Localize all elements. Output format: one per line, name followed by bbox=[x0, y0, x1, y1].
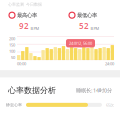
staticText: 50 bbox=[11, 55, 15, 60]
staticText: 52 bbox=[79, 20, 89, 31]
button[interactable]: 最高心率 bbox=[0, 12, 60, 31]
staticText: 100 bbox=[9, 48, 15, 54]
staticText: 最低心率 bbox=[77, 12, 97, 18]
staticText: 24:00 bbox=[105, 61, 114, 66]
button[interactable]: 最低心率 bbox=[60, 12, 120, 31]
staticText: 最高心率 bbox=[17, 12, 37, 18]
staticText: 65次 bbox=[106, 102, 114, 107]
staticText: 24:0(12, 56:00 bbox=[69, 41, 92, 46]
staticText: 静息心率 bbox=[6, 102, 22, 107]
staticText: 92 bbox=[19, 20, 29, 31]
staticText: BPM bbox=[30, 26, 39, 31]
staticText: BPM bbox=[90, 26, 99, 31]
staticText: 睡眠长: 14时0分 bbox=[76, 87, 112, 94]
staticText: 150 bbox=[9, 42, 15, 48]
staticText: 200 bbox=[9, 36, 15, 41]
staticText: 心率监测 今日数据 bbox=[8, 2, 42, 7]
staticText: 心率数据分析 bbox=[8, 85, 56, 95]
staticText: 00:00 bbox=[17, 61, 26, 66]
